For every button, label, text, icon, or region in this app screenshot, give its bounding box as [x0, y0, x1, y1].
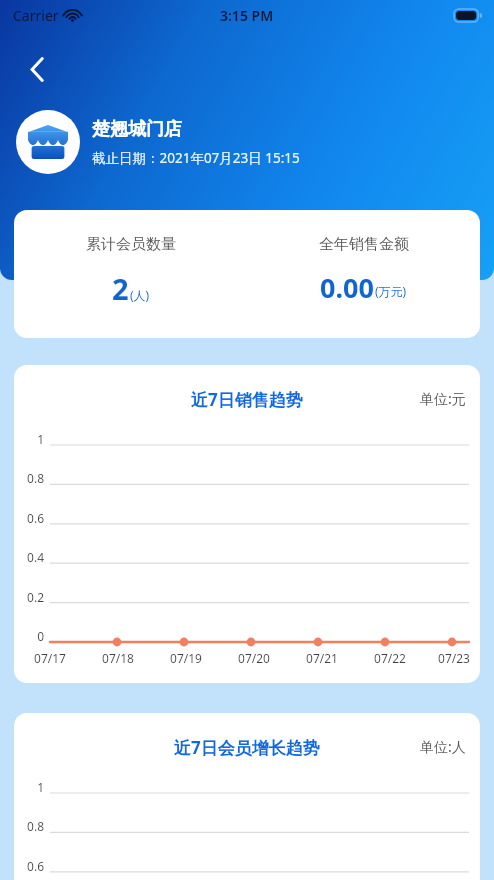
staticText: 07/19 — [158, 650, 214, 666]
staticText: 截止日期：2021年07月23日 15:15 — [92, 149, 300, 167]
staticText: 0 — [14, 628, 44, 644]
staticText: 1 — [14, 779, 44, 795]
button[interactable]: 近7日销售趋势 — [14, 365, 480, 683]
staticText: (万元) — [375, 283, 407, 299]
button[interactable]: 近7日会员增长趋势 — [14, 713, 480, 880]
staticText: 全年销售金额 — [319, 235, 409, 254]
staticText: 2 — [112, 269, 129, 308]
staticText: 0.6 — [14, 510, 44, 526]
staticText: 0.6 — [14, 858, 44, 874]
staticText: 0.00 — [320, 269, 374, 306]
staticText: 1 — [14, 431, 44, 447]
staticText: 近7日销售趋势 — [191, 388, 303, 411]
staticText: 07/18 — [90, 650, 146, 666]
staticText: 0.2 — [14, 589, 44, 605]
button[interactable]: 累计会员数量 — [14, 210, 480, 338]
staticText: 楚翘城门店 — [92, 118, 182, 141]
staticText: 07/20 — [226, 650, 282, 666]
staticText: 单位:人 — [420, 737, 466, 756]
button[interactable]: Back — [14, 46, 60, 92]
staticText: 0.4 — [14, 549, 44, 565]
staticText: 0.8 — [14, 818, 44, 834]
staticText: 07/17 — [22, 650, 78, 666]
staticText: 07/21 — [294, 650, 350, 666]
staticText: 累计会员数量 — [86, 235, 176, 254]
staticText: 0.8 — [14, 470, 44, 486]
staticText: Carrier — [13, 6, 59, 25]
staticText: 单位:元 — [420, 389, 466, 408]
staticText: 3:15 PM — [220, 6, 274, 25]
staticText: 07/23 — [426, 650, 480, 666]
staticText: (人) — [130, 287, 150, 303]
staticText: 07/22 — [362, 650, 418, 666]
staticText: 近7日会员增长趋势 — [174, 736, 320, 759]
